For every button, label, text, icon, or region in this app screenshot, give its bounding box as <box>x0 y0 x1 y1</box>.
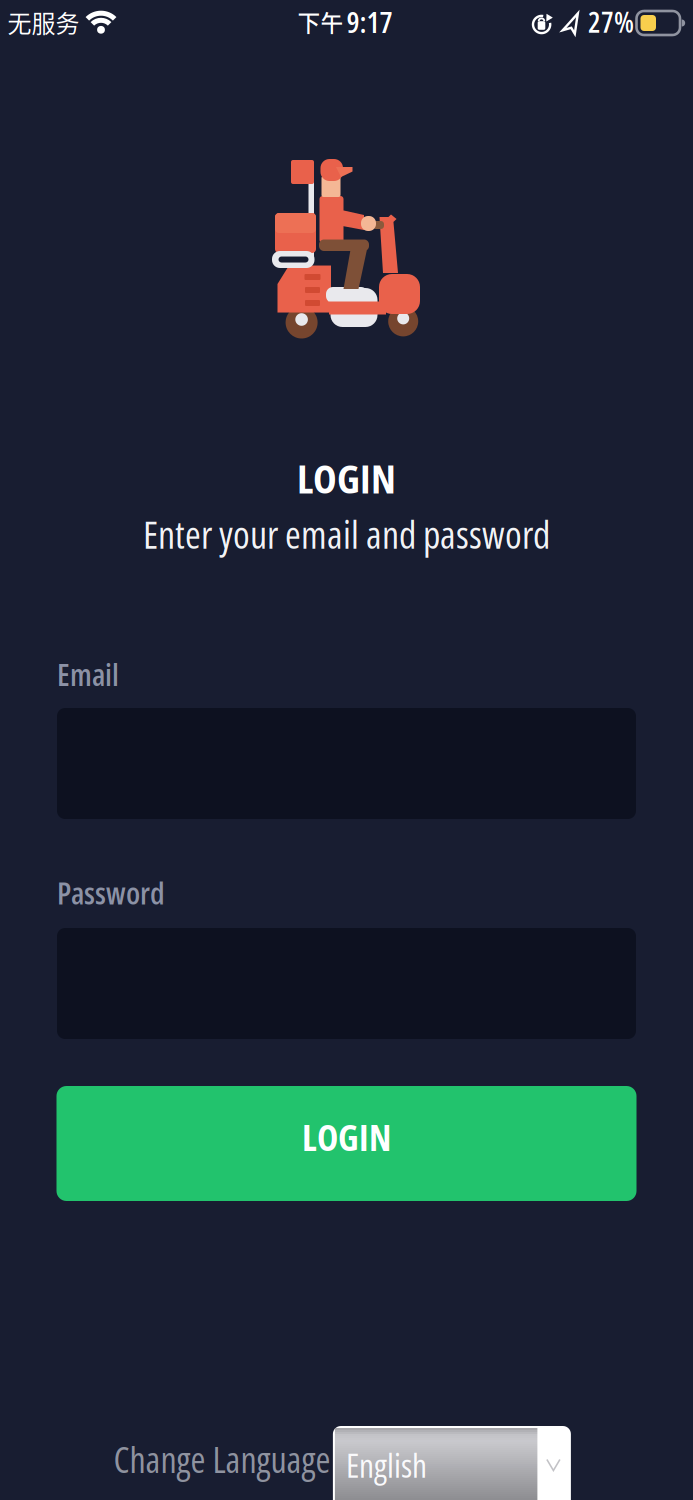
staticText: 下午 <box>297 5 343 38</box>
staticText: Change Language <box>113 1434 330 1483</box>
staticText: LOGIN <box>302 1112 391 1161</box>
staticText: 9:17 <box>346 1 392 41</box>
staticText: Email <box>57 653 119 695</box>
staticText: Enter your email and password <box>143 508 550 560</box>
staticText: LOGIN <box>297 451 396 505</box>
button[interactable]: LOGIN <box>56 1086 636 1201</box>
staticText: 无服务 <box>7 5 79 39</box>
staticText: Password <box>57 872 165 913</box>
staticText: English <box>346 1442 427 1487</box>
button[interactable]: English <box>333 1426 571 1500</box>
staticText: 27% <box>588 3 634 41</box>
